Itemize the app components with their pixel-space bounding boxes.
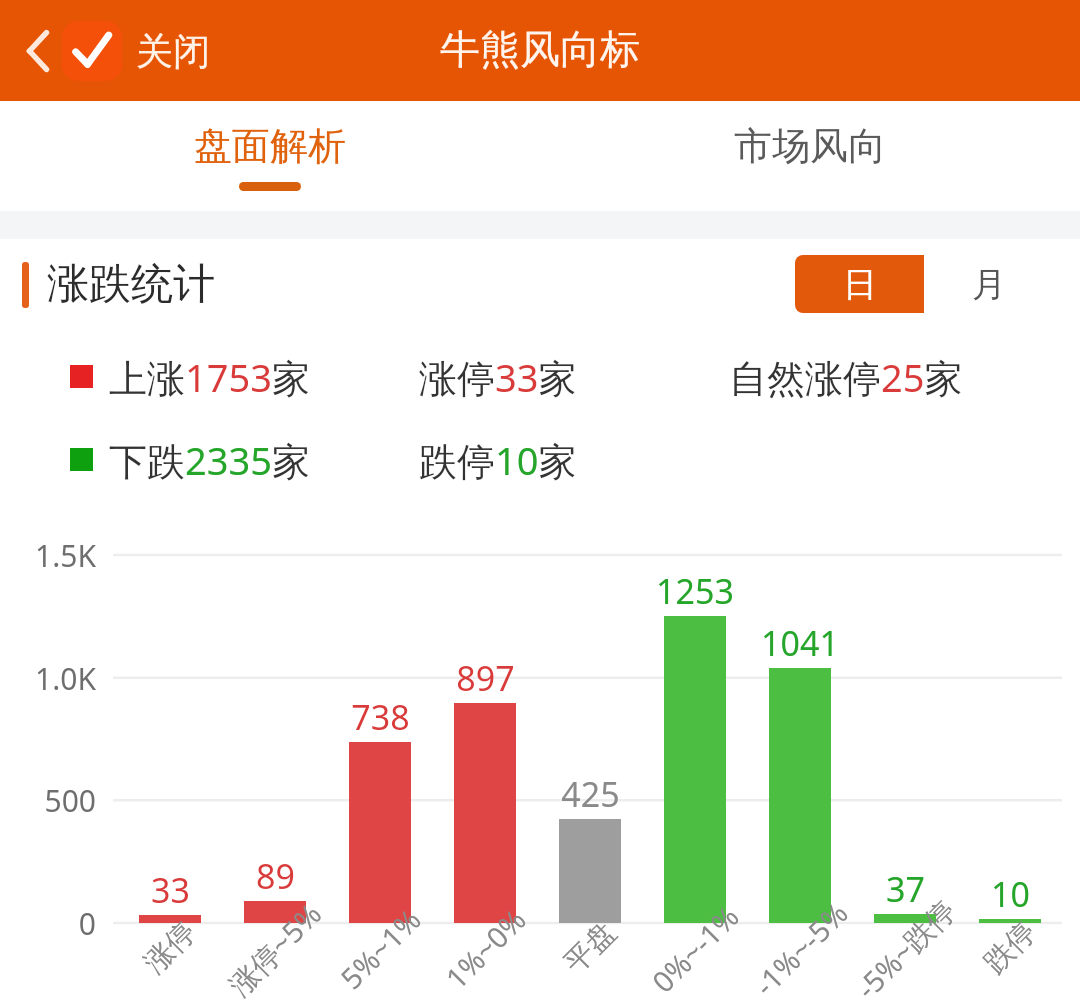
staticText: 1%~0% (437, 900, 533, 997)
staticText: -1%~-5% (745, 893, 856, 1001)
button[interactable]: 市场风向 (540, 101, 1080, 211)
staticText: 89 (256, 853, 295, 899)
button[interactable] (979, 919, 1041, 923)
button[interactable] (874, 914, 936, 923)
staticText: 0%~-1% (643, 896, 747, 1000)
staticText: 425 (561, 771, 620, 817)
staticText: 盘面解析 (194, 122, 346, 170)
staticText: 涨停 (136, 914, 204, 981)
staticText: 1041 (761, 620, 839, 666)
staticText: -5%~跌停 (847, 891, 964, 1001)
button[interactable] (769, 668, 831, 923)
button[interactable]: 月 (924, 255, 1053, 313)
staticText: 市场风向 (734, 122, 886, 170)
staticText: 日 (843, 263, 877, 306)
button[interactable]: 盘面解析 (0, 101, 540, 211)
staticText: 738 (351, 694, 410, 740)
staticText: 涨停~5% (220, 894, 330, 1001)
button[interactable] (139, 915, 201, 923)
staticText: 1.0K (35, 658, 96, 699)
staticText: 37 (886, 866, 925, 912)
button[interactable] (454, 703, 516, 923)
button[interactable] (664, 616, 726, 923)
staticText: 牛熊风向标 (440, 24, 640, 74)
staticText: 上涨1753家 (109, 351, 310, 401)
staticText: 下跌2335家 (109, 434, 310, 484)
button[interactable] (349, 742, 411, 923)
staticText: 月 (972, 263, 1006, 306)
staticText: 0 (78, 903, 96, 944)
staticText: 1253 (656, 568, 734, 614)
staticText: 500 (44, 780, 96, 821)
staticText: 897 (456, 655, 515, 701)
staticText: 跌停10家 (419, 434, 577, 484)
staticText: 1.5K (35, 535, 96, 576)
staticText: 涨停33家 (419, 351, 577, 401)
staticText: 自然涨停25家 (729, 351, 963, 401)
staticText: 平盘 (556, 914, 624, 981)
staticText: 涨跌统计 (47, 258, 215, 311)
staticText: 33 (151, 867, 190, 913)
staticText: 10 (991, 871, 1030, 917)
button[interactable] (244, 901, 306, 923)
staticText: 关闭 (136, 28, 210, 75)
staticText: 跌停 (976, 914, 1044, 981)
button[interactable]: Back / Close (22, 21, 220, 81)
button[interactable]: 日 (795, 255, 924, 313)
staticText: 5%~1% (332, 900, 428, 997)
